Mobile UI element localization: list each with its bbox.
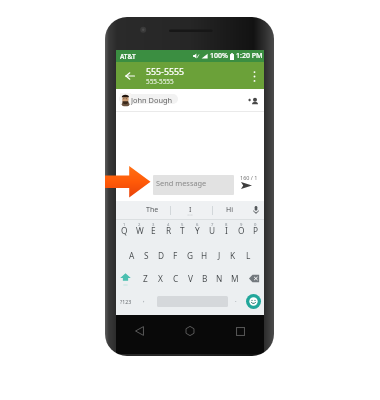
- staticText: B: [202, 273, 208, 284]
- button[interactable]: V: [183, 266, 198, 290]
- button[interactable]: 8: [219, 220, 234, 244]
- button[interactable]: Voice input: [248, 201, 264, 219]
- staticText: 3: [152, 222, 155, 228]
- staticText: Y: [195, 225, 200, 236]
- staticText: 6: [196, 222, 199, 228]
- staticText: I: [189, 205, 192, 215]
- staticText: 1: [123, 222, 126, 228]
- button[interactable]: Back: [131, 323, 147, 339]
- button[interactable]: G: [183, 244, 197, 268]
- staticText: T: [180, 225, 185, 236]
- button[interactable]: L: [241, 244, 255, 268]
- staticText: A: [129, 250, 135, 261]
- staticText: J: [218, 250, 221, 261]
- staticText: 555-5555: [146, 77, 174, 86]
- staticText: I: [225, 225, 228, 236]
- button[interactable]: M: [227, 266, 242, 290]
- staticText: H: [201, 250, 208, 261]
- button[interactable]: [153, 175, 234, 195]
- button[interactable]: Back: [120, 64, 140, 88]
- button[interactable]: Backspace: [246, 267, 262, 289]
- button[interactable]: 6: [190, 220, 205, 244]
- staticText: 9: [240, 222, 243, 228]
- button[interactable]: X: [153, 266, 168, 290]
- button[interactable]: D: [154, 244, 168, 268]
- staticText: .: [235, 296, 237, 304]
- staticText: 2: [138, 222, 141, 228]
- button[interactable]: Emoji: [245, 291, 261, 311]
- staticText: D: [158, 250, 165, 261]
- button[interactable]: K: [226, 244, 240, 268]
- button[interactable]: Z: [138, 266, 153, 290]
- staticText: ,: [143, 296, 145, 304]
- staticText: AT&T: [120, 52, 136, 61]
- staticText: 7: [211, 222, 214, 228]
- staticText: P: [253, 225, 259, 236]
- staticText: 4: [167, 222, 170, 228]
- staticText: C: [173, 273, 179, 284]
- button[interactable]: 9: [234, 220, 249, 244]
- staticText: Hi: [226, 205, 233, 215]
- button[interactable]: 2: [132, 220, 147, 244]
- button[interactable]: 7: [205, 220, 220, 244]
- button[interactable]: [119, 94, 178, 104]
- staticText: 1:20 PM: [236, 51, 263, 61]
- button[interactable]: Shift: [117, 267, 134, 289]
- staticText: O: [238, 225, 245, 236]
- staticText: 555-5555: [146, 66, 185, 78]
- staticText: X: [158, 273, 163, 284]
- staticText: 8: [225, 222, 228, 228]
- button[interactable]: 5: [175, 220, 190, 244]
- button[interactable]: N: [212, 266, 227, 290]
- staticText: U: [209, 225, 216, 236]
- staticText: Send message: [156, 178, 207, 188]
- button[interactable]: ,: [138, 291, 150, 311]
- button[interactable]: ?123: [117, 291, 135, 311]
- button[interactable]: Recents: [232, 323, 248, 339]
- button[interactable]: 1: [117, 220, 132, 244]
- staticText: W: [136, 225, 144, 236]
- button[interactable]: Home: [182, 323, 198, 339]
- button[interactable]: F: [168, 244, 182, 268]
- staticText: G: [187, 250, 194, 261]
- button[interactable]: S: [139, 244, 153, 268]
- button[interactable]: A: [125, 244, 139, 268]
- button[interactable]: 3: [146, 220, 161, 244]
- button[interactable]: J: [212, 244, 226, 268]
- staticText: M: [231, 273, 239, 284]
- button[interactable]: 0: [248, 220, 263, 244]
- staticText: E: [151, 225, 156, 236]
- button[interactable]: Send: [239, 180, 253, 191]
- staticText: K: [230, 250, 236, 261]
- staticText: L: [246, 250, 251, 261]
- staticText: N: [216, 273, 223, 284]
- button[interactable]: 4: [161, 220, 176, 244]
- staticText: Q: [121, 225, 128, 236]
- button[interactable]: H: [197, 244, 211, 268]
- button[interactable]: B: [197, 266, 212, 290]
- staticText: 0: [254, 222, 257, 228]
- button[interactable]: C: [168, 266, 183, 290]
- staticText: Z: [143, 273, 148, 284]
- button[interactable]: More options: [247, 64, 261, 88]
- staticText: ?123: [120, 298, 132, 305]
- staticText: S: [144, 250, 149, 261]
- staticText: 100%: [210, 51, 228, 61]
- staticText: John Dough: [131, 95, 173, 105]
- staticText: The: [146, 205, 159, 215]
- staticText: R: [166, 225, 172, 236]
- staticText: V: [188, 273, 193, 284]
- button[interactable]: Add person: [246, 94, 260, 108]
- staticText: F: [173, 250, 178, 261]
- staticText: 160 / 1: [240, 174, 258, 181]
- staticText: 5: [181, 222, 184, 228]
